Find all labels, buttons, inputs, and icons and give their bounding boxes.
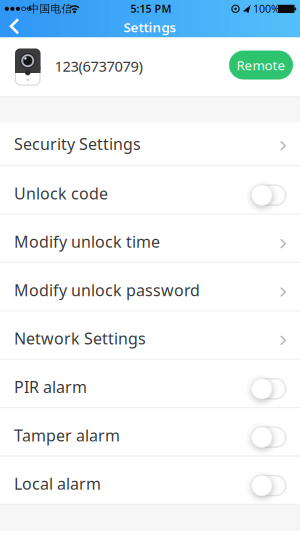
staticText: 123(6737079): [54, 56, 142, 76]
button[interactable]: [251, 475, 286, 496]
button[interactable]: [251, 378, 286, 400]
button[interactable]: Modify unlock time: [0, 213, 300, 262]
button[interactable]: Remote: [229, 50, 293, 79]
staticText: Settings: [123, 18, 176, 36]
button[interactable]: [251, 184, 286, 206]
staticText: Local alarm: [14, 473, 101, 494]
staticText: PIR alarm: [14, 376, 87, 397]
staticText: Security Settings: [14, 133, 141, 154]
staticText: Remote: [236, 56, 285, 74]
staticText: 100%: [253, 2, 280, 16]
staticText: 5:15 PM: [130, 1, 171, 16]
button[interactable]: Modify unlock password: [0, 262, 300, 310]
staticText: Modify unlock password: [14, 279, 200, 301]
staticText: 中国电信: [28, 2, 72, 15]
button[interactable]: Security Settings: [0, 122, 300, 165]
button[interactable]: [0, 0, 30, 37]
staticText: Unlock code: [14, 183, 108, 204]
button[interactable]: Network Settings: [0, 310, 300, 359]
staticText: Tamper alarm: [14, 425, 120, 446]
staticText: Network Settings: [14, 328, 146, 349]
button[interactable]: [251, 426, 286, 448]
staticText: Modify unlock time: [14, 231, 160, 252]
